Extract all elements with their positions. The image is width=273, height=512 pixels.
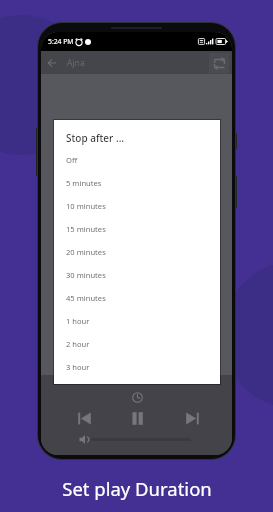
button[interactable]: 3 hour xyxy=(54,355,220,378)
button[interactable]: 20 minutes xyxy=(54,240,220,263)
button[interactable]: Back xyxy=(41,52,63,74)
staticText: Ajna xyxy=(67,57,85,69)
staticText: 15 minutes xyxy=(66,224,106,234)
button[interactable]: Repeat xyxy=(209,53,229,73)
staticText: Set play Duration xyxy=(62,476,212,501)
staticText: 30 minutes xyxy=(66,270,106,280)
staticText: 10 minutes xyxy=(66,201,106,211)
button[interactable]: 15 minutes xyxy=(54,217,220,240)
staticText: Stop after ... xyxy=(66,131,125,145)
staticText: 5:24 PM xyxy=(48,37,74,46)
staticText: Off xyxy=(66,155,78,165)
button[interactable]: Sleep timer xyxy=(128,388,146,406)
button[interactable]: Off xyxy=(54,148,220,171)
button[interactable]: 30 minutes xyxy=(54,263,220,286)
staticText: 2 hour xyxy=(66,339,90,349)
button[interactable]: 5 minutes xyxy=(54,171,220,194)
staticText: 20 minutes xyxy=(66,247,106,257)
button[interactable]: 45 minutes xyxy=(54,286,220,309)
button[interactable]: Previous xyxy=(71,405,97,431)
button[interactable]: 1 hour xyxy=(54,309,220,332)
staticText: 45 minutes xyxy=(66,293,106,303)
button[interactable]: Pause xyxy=(124,405,150,431)
staticText: 1 hour xyxy=(66,316,90,326)
staticText: 3 hour xyxy=(66,362,90,372)
button[interactable]: 10 minutes xyxy=(54,194,220,217)
button[interactable]: 2 hour xyxy=(54,332,220,355)
staticText: 5 minutes xyxy=(66,178,102,188)
button[interactable]: Next xyxy=(179,405,205,431)
